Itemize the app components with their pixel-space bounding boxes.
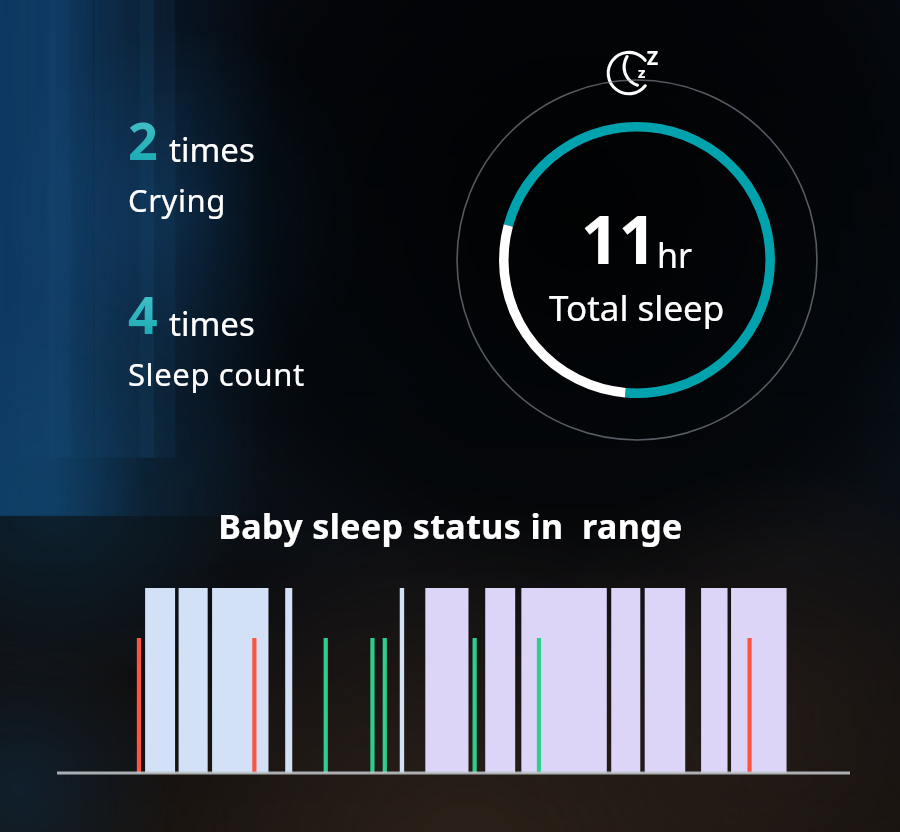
button[interactable]: 4: [128, 278, 305, 395]
staticText: hr: [657, 232, 693, 278]
button[interactable]: 2: [128, 104, 255, 221]
button[interactable]: [57, 577, 850, 777]
staticText: 11: [581, 193, 657, 283]
staticText: Total sleep: [549, 284, 725, 332]
staticText: 2: [128, 104, 158, 175]
other: Sleep: [607, 42, 667, 98]
staticText: Crying: [128, 179, 227, 221]
staticText: Z: [647, 45, 659, 71]
staticText: Baby sleep status in range: [218, 503, 683, 549]
staticText: times: [169, 127, 255, 172]
staticText: Sleep count: [128, 353, 305, 395]
staticText: 4: [128, 278, 158, 349]
staticText: times: [169, 301, 255, 346]
staticText: z: [638, 62, 646, 82]
